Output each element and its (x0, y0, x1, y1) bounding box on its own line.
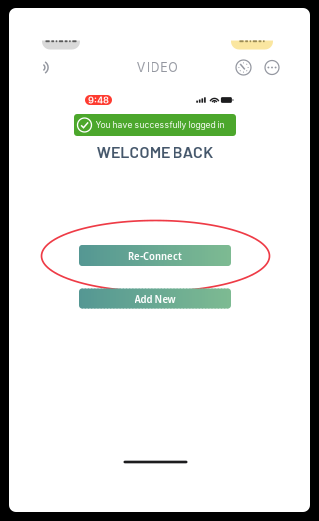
button[interactable]: Audio (33, 55, 57, 79)
staticText: E (160, 60, 167, 75)
staticText: A (183, 142, 193, 161)
staticText: E (111, 142, 120, 161)
staticText: D (150, 60, 159, 75)
staticText: O (140, 142, 150, 161)
staticText: Re-Connect (128, 248, 182, 263)
staticText: O (168, 60, 177, 75)
staticText: L (120, 142, 129, 161)
staticText: E (161, 142, 170, 161)
staticText: M (150, 142, 161, 161)
button[interactable]: Re-Connect (79, 245, 231, 266)
staticText: C (129, 142, 139, 161)
staticText: K (203, 142, 213, 161)
staticText: Add New (134, 291, 175, 306)
button[interactable]: Add New (79, 288, 231, 308)
staticText: I (147, 60, 150, 75)
staticText: W (97, 142, 111, 161)
staticText: You have successfully logged in (95, 120, 224, 130)
staticText: V (137, 60, 146, 75)
staticText: C (193, 142, 203, 161)
button[interactable]: Playback speed (232, 56, 254, 78)
button[interactable]: More options (261, 56, 283, 78)
staticText: 9:48 (88, 94, 109, 106)
staticText: B (173, 142, 183, 161)
